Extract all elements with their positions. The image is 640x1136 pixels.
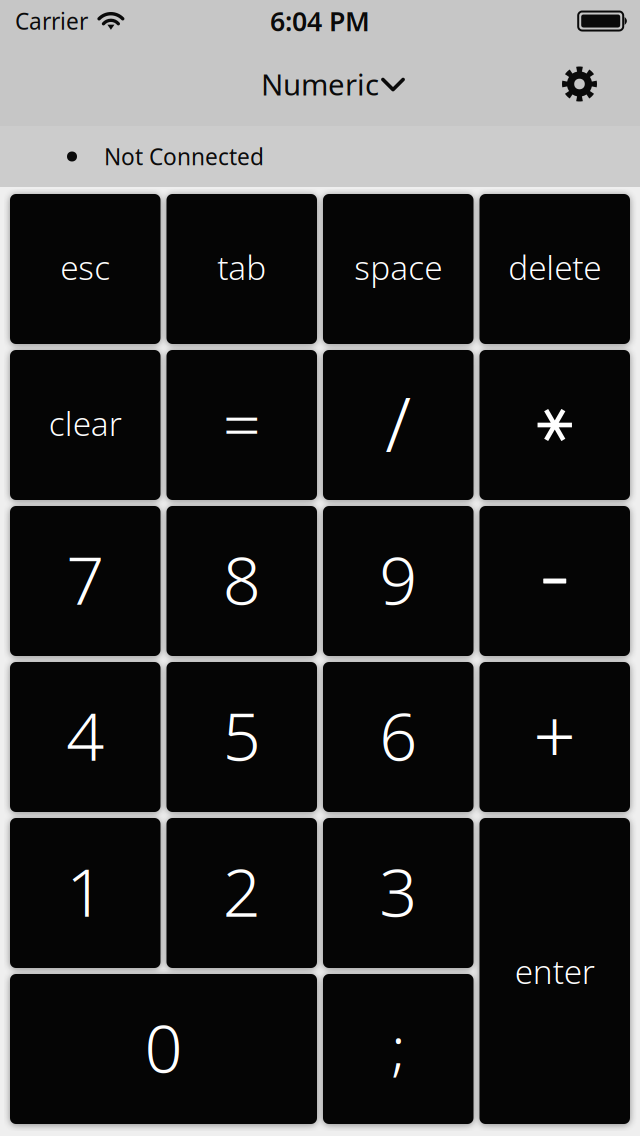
button[interactable]: asterisk [479, 350, 630, 500]
staticText: + [533, 685, 576, 785]
button[interactable]: esc [10, 194, 160, 344]
button[interactable]: Numeric [261, 64, 379, 103]
button[interactable]: clear [10, 350, 160, 500]
staticText: 7 [66, 535, 104, 623]
button[interactable]: 6 [323, 662, 473, 812]
staticText: 0 [144, 1003, 182, 1091]
staticText: enter [515, 949, 595, 993]
staticText: Carrier [15, 6, 88, 36]
button[interactable]: 0 [10, 974, 317, 1124]
button[interactable]: minus [479, 506, 630, 656]
staticText: 6 [379, 691, 417, 779]
button[interactable]: 9 [323, 506, 473, 656]
staticText: 8 [223, 535, 261, 623]
staticText: 9 [379, 535, 417, 623]
button[interactable]: 2 [166, 818, 317, 968]
button[interactable]: 1 [10, 818, 160, 968]
staticText: space [354, 245, 442, 289]
staticText: Numeric [261, 64, 379, 103]
button[interactable]: + [479, 662, 630, 812]
staticText: / [385, 373, 411, 473]
staticText: 6:04 PM [270, 3, 370, 39]
staticText: 2 [223, 847, 261, 935]
button[interactable]: 3 [323, 818, 473, 968]
staticText: 4 [66, 691, 104, 779]
button[interactable]: = [166, 350, 317, 500]
staticText: 5 [223, 691, 261, 779]
staticText: delete [508, 245, 601, 289]
staticText: 1 [66, 847, 104, 935]
staticText: clear [49, 401, 122, 445]
button[interactable]: space [323, 194, 473, 344]
staticText: ; [391, 1008, 405, 1086]
button[interactable]: Settings [562, 66, 640, 101]
staticText: Not Connected [104, 141, 264, 171]
staticText: tab [217, 245, 266, 289]
button[interactable]: 7 [10, 506, 160, 656]
button[interactable]: / [323, 350, 473, 500]
button[interactable]: 5 [166, 662, 317, 812]
staticText: = [223, 379, 261, 467]
staticText: esc [60, 245, 110, 289]
button[interactable]: enter [479, 818, 630, 1124]
button[interactable]: ; [323, 974, 473, 1124]
staticText: 3 [379, 847, 417, 935]
button[interactable]: tab [166, 194, 317, 344]
button[interactable]: delete [479, 194, 630, 344]
button[interactable]: 8 [166, 506, 317, 656]
button[interactable]: 4 [10, 662, 160, 812]
